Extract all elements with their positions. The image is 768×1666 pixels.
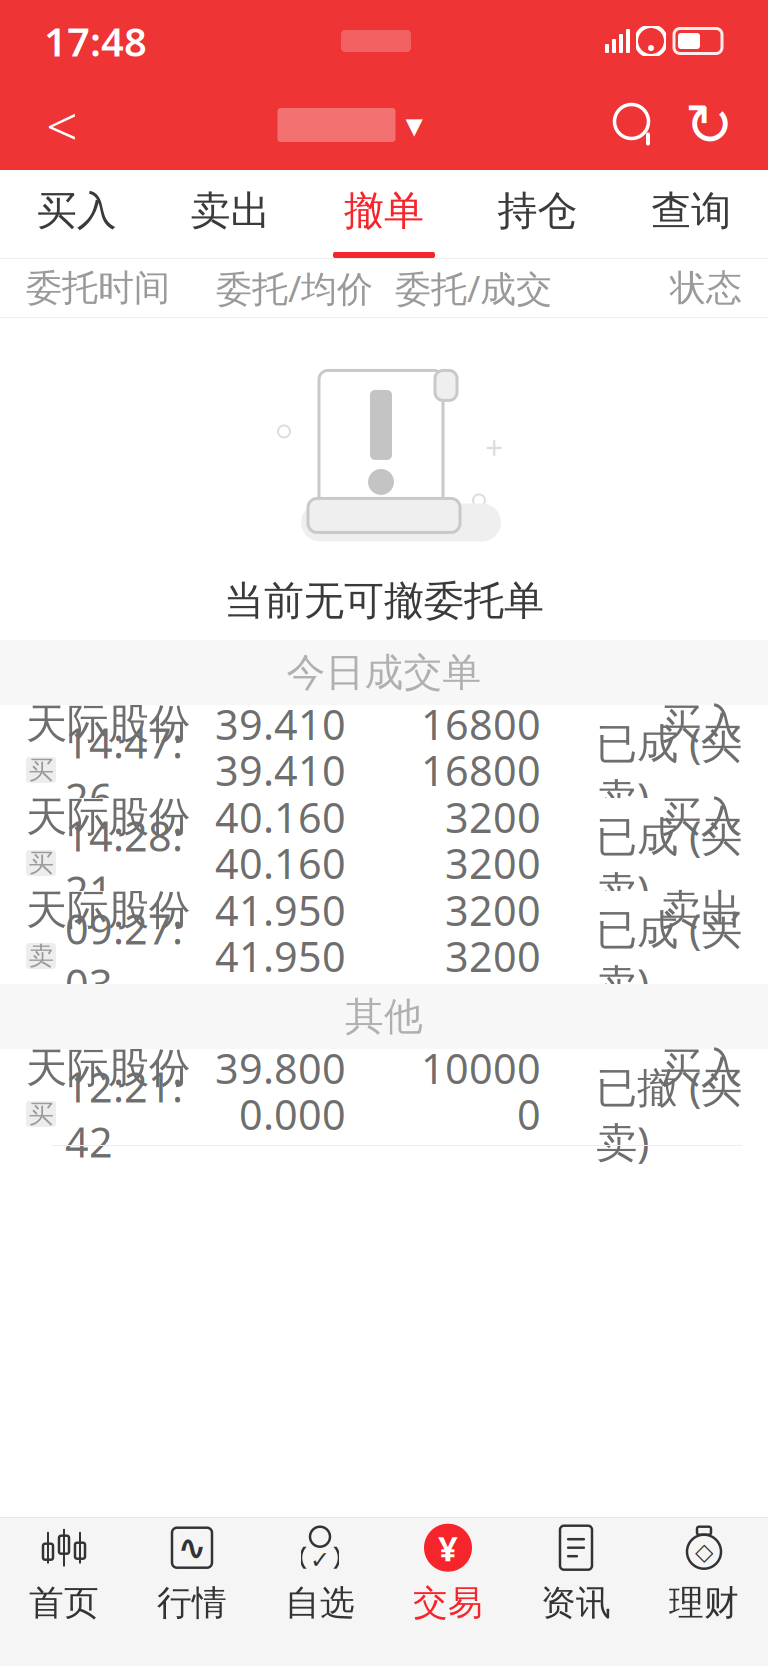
staticText: ▾ <box>405 105 422 145</box>
staticText: 14:47:26 <box>65 715 183 825</box>
staticText: 天际股份 <box>26 792 190 842</box>
button[interactable]: 买入 <box>0 170 154 258</box>
button[interactable]: 天际股份 <box>0 798 768 891</box>
staticText: 0.000 <box>239 1087 346 1141</box>
button[interactable]: 撤单 <box>307 170 461 258</box>
staticText: 10000 <box>421 1041 541 1095</box>
staticText: 已撤 (买卖) <box>596 1059 742 1169</box>
staticText: 理财 <box>669 1582 739 1624</box>
button[interactable]: 首页 <box>0 1518 128 1628</box>
staticText: 天际股份 <box>26 885 190 935</box>
button[interactable]: 天际股份 <box>0 705 768 798</box>
staticText: 16800 <box>421 743 541 797</box>
staticText: 查询 <box>651 186 731 235</box>
staticText: 委托/成交 <box>395 264 552 312</box>
staticText: 交易 <box>413 1582 483 1624</box>
button[interactable]: 天际股份 <box>0 1049 768 1142</box>
button[interactable]: ✓ <box>256 1518 384 1628</box>
staticText: 3200 <box>445 929 541 983</box>
staticText: 41.950 <box>215 929 346 983</box>
staticText: 买 <box>28 1098 53 1129</box>
staticText: 委托/均价 <box>216 264 373 312</box>
staticText: 3200 <box>445 836 541 890</box>
staticText: 已成 (买卖) <box>596 715 742 825</box>
staticText: 状态 <box>670 266 742 310</box>
staticText: 买 <box>28 847 53 878</box>
staticText: 天际股份 <box>26 1043 190 1093</box>
staticText: 其他 <box>345 993 423 1040</box>
staticText: 已成 (买卖) <box>596 901 742 1011</box>
staticText: 39.410 <box>215 743 346 797</box>
staticText: 16800 <box>421 697 541 751</box>
staticText: 17:48 <box>44 14 147 67</box>
staticText: 资讯 <box>541 1582 611 1624</box>
button[interactable]: ∿ <box>128 1518 256 1628</box>
staticText: 买入 <box>660 792 742 842</box>
staticText: 委托时间 <box>26 266 170 310</box>
staticText: 行情 <box>157 1582 227 1624</box>
staticText: 40.160 <box>215 790 346 844</box>
staticText: 09:27:03 <box>65 901 183 1011</box>
button[interactable]: ¥ <box>384 1518 512 1628</box>
button[interactable]: 卖出 <box>154 170 307 258</box>
staticText: 自选 <box>285 1582 355 1624</box>
button[interactable]: Back <box>22 85 102 165</box>
staticText: 卖出 <box>660 885 742 935</box>
button[interactable]: 持仓 <box>461 170 614 258</box>
staticText: 今日成交单 <box>286 649 481 696</box>
staticText: 卖出 <box>190 186 270 235</box>
button[interactable]: ◇ <box>640 1518 768 1628</box>
staticText: + <box>485 426 503 469</box>
staticText: 卖 <box>28 940 53 971</box>
staticText: ✓ <box>310 1546 330 1573</box>
staticText: ∿ <box>177 1528 206 1567</box>
staticText: ◇ <box>695 1538 713 1565</box>
staticText: 买入 <box>660 699 742 749</box>
staticText: 3200 <box>445 883 541 937</box>
staticText: ↻ <box>684 92 733 158</box>
staticText: 41.950 <box>215 883 346 937</box>
staticText: < <box>46 88 78 162</box>
staticText: 买入 <box>37 186 117 235</box>
button[interactable]: Search <box>598 88 672 162</box>
staticText: 39.410 <box>215 697 346 751</box>
staticText: 买 <box>28 754 53 785</box>
staticText: 39.800 <box>215 1041 346 1095</box>
staticText: 0 <box>517 1087 541 1141</box>
staticText: 12:21:42 <box>65 1059 183 1169</box>
staticText: 已成 (买卖) <box>596 808 742 918</box>
staticText: 当前无可撤委托单 <box>224 576 544 625</box>
staticText: 40.160 <box>215 836 346 890</box>
staticText: ¥ <box>438 1525 458 1571</box>
button[interactable]: Refresh <box>672 88 746 162</box>
button[interactable]: 天际股份 <box>0 891 768 984</box>
button[interactable]: 查询 <box>614 170 768 258</box>
staticText: 撤单 <box>344 186 424 235</box>
staticText: 天际股份 <box>26 699 190 749</box>
staticText: 持仓 <box>498 186 578 235</box>
staticText: 首页 <box>29 1582 99 1624</box>
staticText: 3200 <box>445 790 541 844</box>
button[interactable]: Account <box>277 95 422 155</box>
staticText: 买入 <box>660 1043 742 1093</box>
staticText: 14:28:21 <box>65 808 183 918</box>
button[interactable]: 资讯 <box>512 1518 640 1628</box>
